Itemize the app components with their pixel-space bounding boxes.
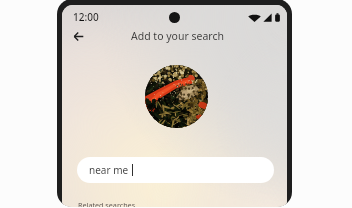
button[interactable]: Search image: [145, 65, 208, 128]
staticText: Related searches: [78, 200, 136, 207]
button[interactable]: Back: [71, 29, 86, 44]
staticText: near me: [89, 163, 129, 177]
staticText: Add to your search: [131, 29, 224, 43]
staticText: 12:00: [73, 10, 99, 24]
button[interactable]: near me: [77, 157, 274, 183]
